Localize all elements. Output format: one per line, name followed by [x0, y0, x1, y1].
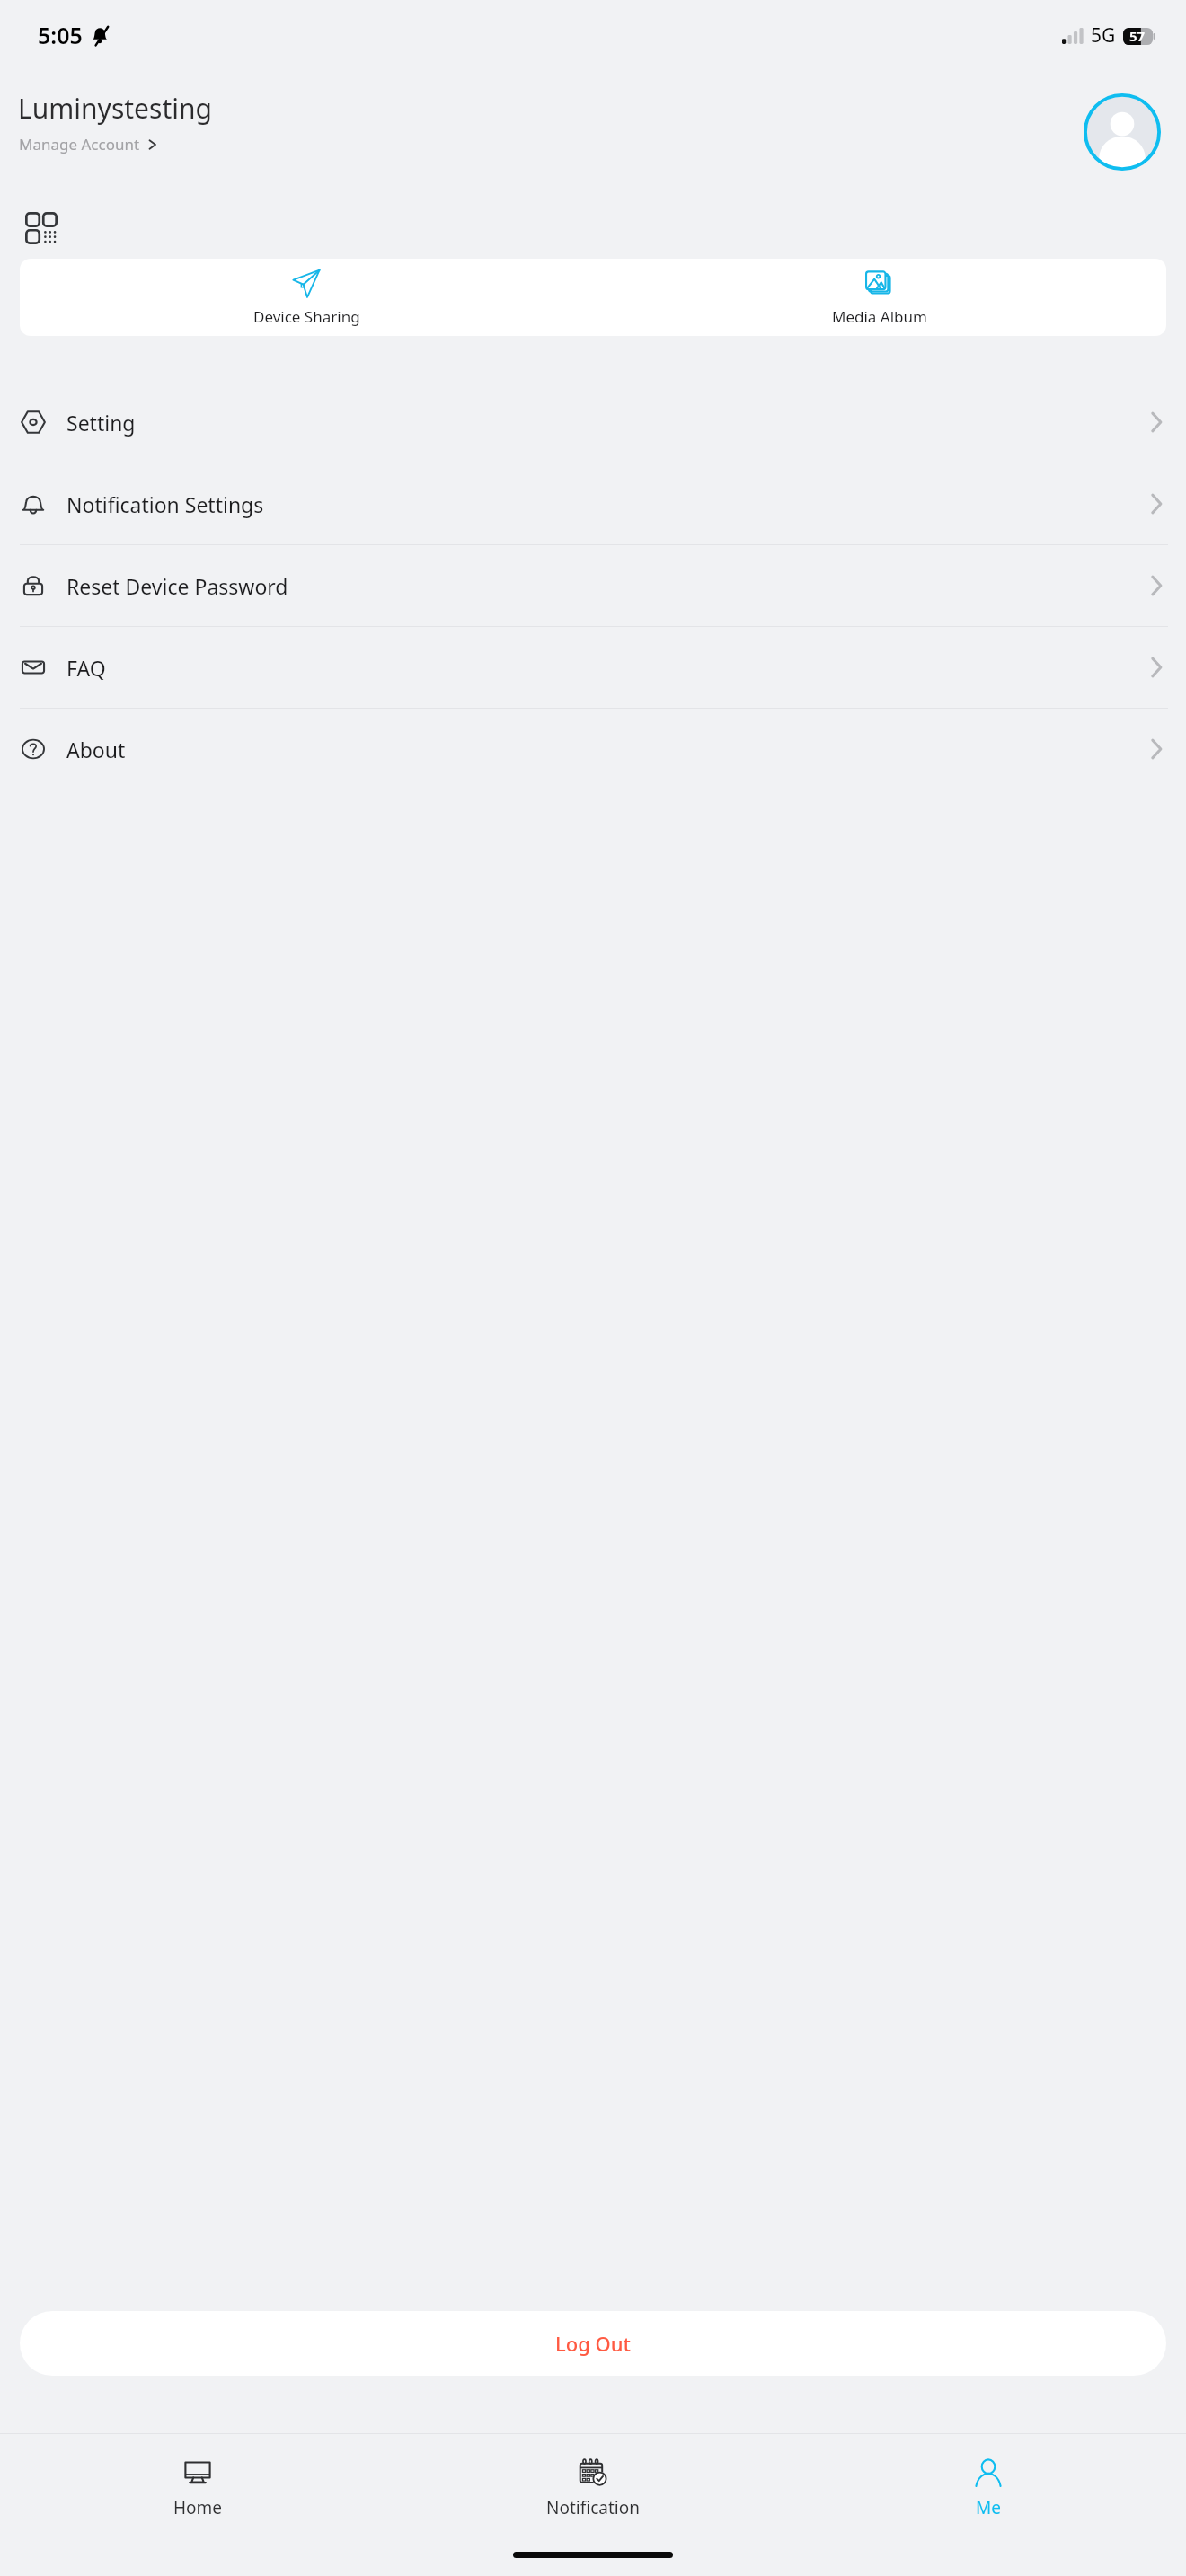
button[interactable]: Media Album: [593, 259, 1166, 336]
button[interactable]: About: [0, 709, 1186, 790]
button[interactable]: Setting: [0, 382, 1186, 463]
staticText: Manage Account: [19, 134, 140, 154]
staticText: Setting: [66, 409, 136, 437]
staticText: 5G: [1091, 22, 1116, 49]
button[interactable]: Reset Device Password: [0, 545, 1186, 626]
button[interactable]: Profile avatar: [1084, 93, 1161, 171]
staticText: 57: [1129, 27, 1146, 45]
staticText: Home: [173, 2496, 223, 2519]
staticText: About: [66, 736, 126, 763]
staticText: Notification: [546, 2496, 640, 2519]
button[interactable]: Log Out: [20, 2311, 1166, 2376]
staticText: Me: [976, 2496, 1001, 2519]
button[interactable]: Scan QR code: [20, 207, 63, 250]
staticText: FAQ: [66, 654, 106, 682]
staticText: 5:05: [38, 20, 83, 50]
staticText: Device Sharing: [253, 306, 360, 327]
button[interactable]: Home: [0, 2434, 395, 2542]
button[interactable]: Device Sharing: [20, 259, 593, 336]
staticText: Luminystesting: [18, 90, 212, 127]
staticText: Notification Settings: [66, 490, 264, 518]
button[interactable]: Manage Account: [18, 132, 158, 156]
button[interactable]: Me: [791, 2434, 1186, 2542]
staticText: Log Out: [555, 2330, 632, 2357]
button[interactable]: FAQ: [0, 627, 1186, 708]
button[interactable]: Notification Settings: [0, 463, 1186, 544]
staticText: Media Album: [832, 306, 927, 327]
staticText: Reset Device Password: [66, 572, 288, 600]
button[interactable]: Notification: [395, 2434, 791, 2542]
